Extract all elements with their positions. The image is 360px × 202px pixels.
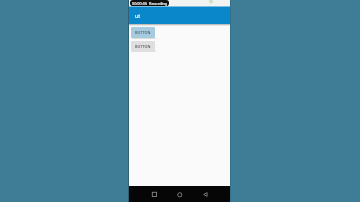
- button[interactable]: [203, 192, 208, 197]
- staticText: BUTTON: [135, 44, 151, 49]
- button[interactable]: [152, 192, 157, 197]
- button[interactable]: [177, 192, 183, 198]
- staticText: BUTTON: [135, 30, 151, 35]
- staticText: 00:00:06 Recording: [132, 1, 168, 6]
- button[interactable]: BUTTON: [131, 27, 155, 38]
- staticText: ut: [135, 12, 141, 19]
- button[interactable]: BUTTON: [131, 41, 155, 52]
